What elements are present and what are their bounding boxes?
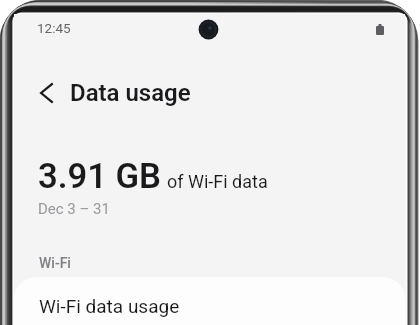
button[interactable]: Back bbox=[22, 69, 70, 117]
button[interactable]: Wi-Fi data usage bbox=[14, 277, 405, 325]
staticText: 12:45 bbox=[37, 20, 71, 36]
staticText: 3.91 GB bbox=[38, 156, 161, 196]
staticText: Data usage bbox=[70, 79, 191, 107]
staticText: Wi-Fi data usage bbox=[39, 295, 180, 317]
staticText: Wi-Fi bbox=[39, 255, 71, 271]
staticText: of Wi-Fi data bbox=[167, 171, 268, 192]
staticText: Dec 3 – 31 bbox=[38, 200, 110, 218]
